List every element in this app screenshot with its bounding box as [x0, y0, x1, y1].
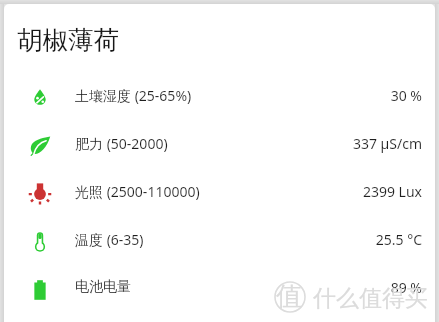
staticText: 2399 Lux	[362, 182, 422, 201]
staticText: 25.5 °C	[375, 230, 422, 249]
other: Temperature	[28, 228, 52, 252]
button[interactable]: Light level	[4, 168, 435, 216]
other: Soil moisture	[28, 84, 52, 108]
button[interactable]: Fertility	[4, 120, 435, 168]
other: Light level	[28, 180, 52, 204]
staticText: 电池电量	[75, 278, 131, 296]
staticText: 30 %	[390, 86, 422, 105]
staticText: 土壤湿度 (25-65%)	[75, 86, 192, 105]
button[interactable]: Temperature	[4, 216, 435, 264]
staticText: 值	[276, 280, 302, 312]
button[interactable]: Soil moisture	[4, 72, 435, 120]
other: Battery level	[28, 276, 52, 300]
other: Fertility	[28, 132, 52, 156]
staticText: 什么值得买	[313, 284, 428, 313]
staticText: 光照 (2500-110000)	[75, 182, 200, 201]
staticText: 温度 (6-35)	[75, 230, 144, 249]
staticText: 337 µS/cm	[352, 134, 422, 153]
staticText: 89 %	[390, 278, 422, 297]
staticText: 肥力 (50-2000)	[75, 134, 168, 153]
staticText: 胡椒薄荷	[17, 24, 119, 56]
button[interactable]: Battery level	[4, 264, 435, 312]
